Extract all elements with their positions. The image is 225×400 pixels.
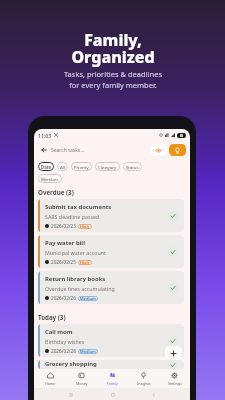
button[interactable]: Mark complete — [168, 360, 178, 369]
staticText: Municipal water account — [45, 249, 106, 256]
staticText: Search tasks... — [51, 147, 85, 154]
staticText: Medium — [80, 296, 96, 301]
staticText: High — [80, 224, 90, 229]
button[interactable]: All — [57, 162, 68, 171]
button[interactable]: Pay water bill — [38, 235, 184, 268]
staticText: Birthday wishes — [45, 338, 85, 345]
staticText: 2026/02/23 — [51, 223, 76, 229]
staticText: High — [80, 260, 90, 265]
staticText: Today (3) — [38, 313, 66, 321]
staticText: Medium — [80, 349, 96, 354]
button[interactable]: Search tasks... — [37, 144, 147, 156]
staticText: Overdue fines accumulating — [45, 285, 115, 292]
button[interactable]: Call mom — [38, 324, 184, 357]
staticText: for every family member. — [69, 80, 157, 90]
button[interactable]: Mark complete — [168, 336, 178, 346]
button[interactable]: Suggestions — [169, 144, 186, 156]
staticText: Home — [45, 381, 56, 386]
staticText: 2026/02/28 — [51, 348, 76, 354]
staticText: Organized — [71, 46, 155, 68]
button[interactable]: Return library books — [38, 271, 184, 304]
staticText: Settings — [168, 381, 182, 386]
staticText: All — [60, 164, 65, 170]
staticText: Call mom — [45, 328, 73, 336]
button[interactable]: Show completed tasks — [150, 144, 167, 156]
staticText: Overdue (3) — [38, 188, 74, 196]
button[interactable]: Home — [34, 369, 66, 388]
button[interactable]: Priority — [71, 162, 92, 171]
staticText: Insights — [137, 381, 151, 386]
staticText: Submit tax documents — [45, 203, 112, 211]
button[interactable]: Status — [123, 162, 142, 171]
staticText: Family, — [84, 29, 142, 51]
button[interactable]: Date — [38, 162, 54, 171]
staticText: Pay water bill — [45, 239, 85, 247]
staticText: Status — [126, 164, 139, 170]
staticText: 2026/02/26 — [51, 295, 76, 301]
button[interactable]: Money — [66, 369, 97, 388]
staticText: 11:03 — [38, 132, 52, 139]
staticText: Family — [107, 381, 118, 386]
button[interactable]: Mark complete — [168, 211, 178, 221]
staticText: Grocery shopping — [45, 360, 97, 368]
staticText: Return library books — [45, 275, 106, 283]
staticText: Category — [98, 164, 117, 170]
button[interactable]: Mark complete — [168, 247, 178, 257]
staticText: Money — [76, 381, 88, 386]
button[interactable]: Home — [108, 390, 117, 399]
button[interactable]: Insights — [128, 369, 159, 388]
button[interactable]: Back — [149, 390, 158, 399]
staticText: Date — [41, 164, 51, 170]
button[interactable]: Category — [95, 162, 120, 171]
staticText: 2026/02/25 — [51, 259, 76, 265]
button[interactable]: Mark complete — [168, 283, 178, 293]
button[interactable]: Grocery shopping — [38, 360, 184, 369]
staticText: Member — [41, 176, 59, 182]
staticText: SARS deadline passed — [45, 213, 100, 220]
staticText: 83 — [180, 134, 184, 138]
button[interactable]: Member — [38, 174, 62, 183]
button[interactable]: Family — [97, 369, 128, 388]
button[interactable]: Submit tax documents — [38, 199, 184, 232]
button[interactable]: Add task — [165, 346, 182, 360]
staticText: Tasks, priorities & deadlines — [64, 69, 162, 79]
button[interactable]: Settings — [159, 369, 190, 388]
button[interactable]: Recents — [66, 390, 75, 399]
staticText: Priority — [74, 164, 89, 170]
